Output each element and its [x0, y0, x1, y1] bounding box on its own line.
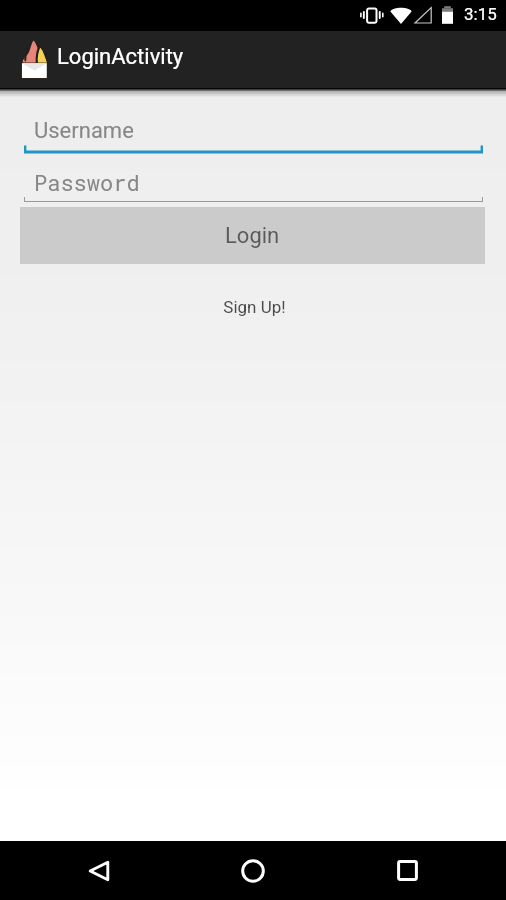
- button[interactable]: Home: [227, 845, 278, 896]
- staticText: LoginActivity: [57, 44, 184, 70]
- staticText: Password: [34, 168, 140, 197]
- button[interactable]: Recent apps: [382, 845, 433, 896]
- staticText: Sign Up!: [223, 297, 286, 317]
- button[interactable]: Password: [24, 160, 483, 203]
- staticText: Username: [34, 118, 134, 144]
- button[interactable]: Sign Up!: [209, 293, 300, 321]
- staticText: 3:15: [464, 4, 497, 24]
- button[interactable]: Back: [73, 845, 124, 896]
- button[interactable]: Login: [20, 207, 485, 264]
- staticText: Login: [225, 223, 280, 249]
- button[interactable]: Username: [24, 110, 483, 154]
- other: App icon: [21, 40, 48, 79]
